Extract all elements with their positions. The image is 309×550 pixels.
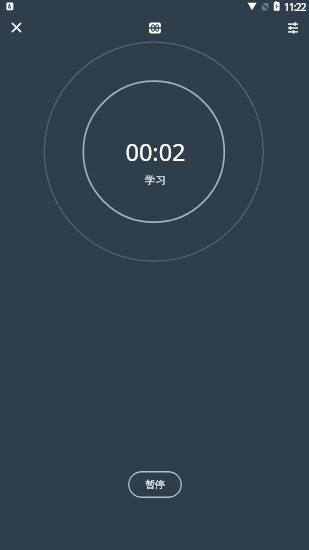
- button[interactable]: Timer 00:02, 学习: [1, 136, 309, 187]
- button[interactable]: Clock style: [140, 13, 169, 42]
- button[interactable]: Settings: [278, 13, 307, 42]
- staticText: 暂停: [145, 478, 165, 491]
- staticText: 11:22: [284, 0, 306, 14]
- staticText: 00:02: [125, 136, 186, 168]
- button[interactable]: Close: [2, 13, 31, 42]
- button[interactable]: 暂停: [128, 471, 182, 498]
- staticText: 学习: [145, 174, 166, 187]
